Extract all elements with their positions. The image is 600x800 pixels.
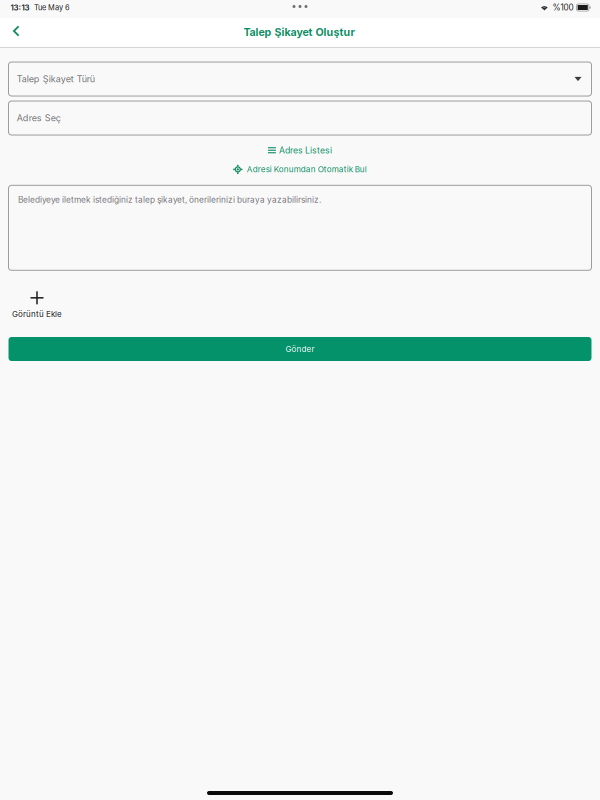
staticText: Talep Şikayet Oluştur — [243, 25, 354, 38]
staticText: Adres Seç — [17, 112, 61, 123]
staticText: Adresi Konumdan Otomatik Bul — [247, 164, 367, 174]
staticText: Adres Listesi — [279, 145, 332, 155]
button[interactable]: Back — [0, 20, 30, 46]
button[interactable]: Adres Seç — [8, 101, 591, 135]
staticText: Görüntü Ekle — [12, 309, 62, 319]
staticText: Talep Şikayet Türü — [17, 73, 95, 84]
staticText: Tue May 6 — [34, 3, 70, 12]
button[interactable]: Gönder — [8, 337, 591, 361]
staticText: Belediyeye iletmek istediğiniz talep şik… — [18, 195, 321, 205]
button[interactable]: Adres Listesi — [268, 143, 332, 157]
staticText: %100 — [552, 2, 573, 12]
button[interactable]: Talep Şikayet Türü — [8, 62, 591, 96]
staticText: 13:13 — [10, 3, 29, 12]
button[interactable]: Görüntü Ekle — [9, 291, 65, 319]
button[interactable]: Adresi Konumdan Otomatik Bul — [233, 162, 367, 176]
staticText: Gönder — [285, 344, 314, 354]
